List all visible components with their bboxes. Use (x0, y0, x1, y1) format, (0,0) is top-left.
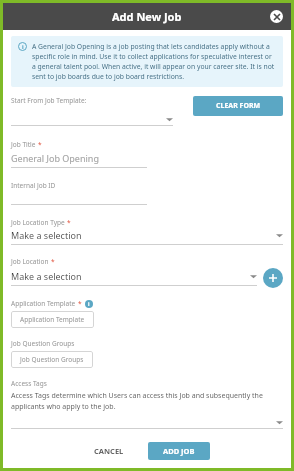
button[interactable]: Application Template (11, 311, 94, 328)
staticText: * (51, 257, 55, 266)
staticText: Application Template (11, 299, 76, 308)
staticText: * (78, 299, 82, 308)
staticText: Job Location Type (11, 218, 65, 227)
button[interactable]: CLEAR FORM (193, 96, 283, 116)
staticText: i (88, 301, 90, 308)
button[interactable]: Add location (263, 268, 283, 288)
staticText: General Job Opening (11, 152, 99, 164)
staticText: * (38, 140, 42, 149)
staticText: Internal Job ID (11, 181, 56, 190)
staticText: A General Job Opening is a job posting t… (32, 42, 276, 81)
staticText: Make a selection (11, 270, 82, 282)
button[interactable]: Close (270, 10, 283, 23)
staticText: Job Question Groups (20, 355, 84, 364)
staticText: Job Question Groups (11, 339, 75, 348)
staticText: Job Title (11, 140, 36, 149)
staticText: Make a selection (11, 229, 82, 241)
staticText: CLEAR FORM (216, 101, 261, 111)
staticText: CANCEL (94, 446, 124, 456)
button[interactable]: ADD JOB (148, 442, 210, 460)
staticText: Access Tags determine which Users can ac… (11, 391, 283, 411)
staticText: i (22, 43, 24, 50)
staticText: Access Tags (11, 379, 47, 388)
button[interactable]: Job Question Groups (11, 351, 93, 368)
staticText: * (67, 218, 71, 227)
staticText: Job Location (11, 257, 49, 266)
staticText: Start From Job Template: (11, 96, 87, 105)
button[interactable]: CANCEL (84, 441, 134, 461)
staticText: Application Template (20, 315, 85, 324)
staticText: Add New Job (112, 9, 182, 24)
staticText: ADD JOB (163, 446, 195, 456)
